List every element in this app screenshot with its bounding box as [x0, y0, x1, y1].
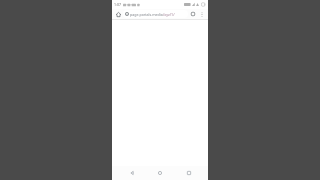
button[interactable]: Recent apps [180, 166, 198, 180]
staticText: /xyz/1/ [163, 12, 175, 17]
staticText: page.portals.media [130, 12, 163, 17]
button[interactable]: Home [151, 166, 169, 180]
button[interactable]: Home [114, 10, 122, 18]
staticText: 1:07 [114, 2, 121, 7]
button[interactable]: Back [123, 166, 141, 180]
button[interactable]: Switch tabs [189, 10, 197, 18]
button[interactable]: page.portals.media [123, 10, 188, 18]
button[interactable]: More options [198, 10, 206, 18]
